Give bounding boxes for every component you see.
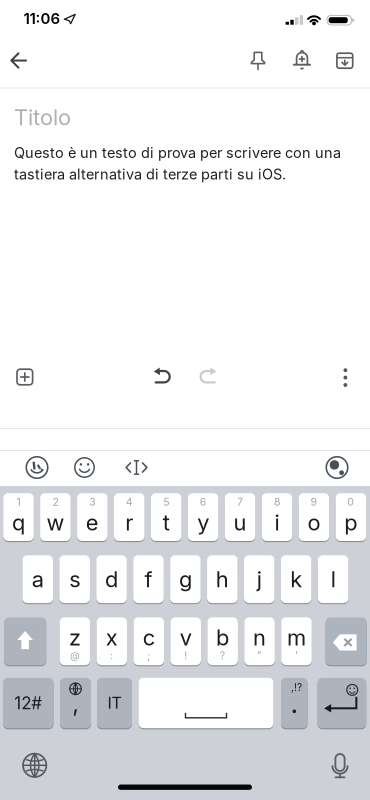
- button[interactable]: m: [281, 617, 312, 665]
- staticText: 8: [274, 496, 280, 508]
- staticText: :: [110, 650, 113, 662]
- staticText: c: [143, 624, 155, 651]
- staticText: d: [105, 566, 118, 592]
- button[interactable]: h: [207, 555, 238, 603]
- staticText: z: [69, 624, 81, 651]
- staticText: 5: [163, 496, 169, 508]
- button[interactable]: Next keyboard: [15, 745, 55, 785]
- button[interactable]: b: [207, 617, 238, 665]
- button[interactable]: Archive: [329, 44, 361, 76]
- staticText: 7: [237, 496, 243, 508]
- staticText: 9: [310, 496, 317, 508]
- button[interactable]: d: [96, 555, 127, 603]
- button[interactable]: Shift: [4, 617, 46, 665]
- staticText: t: [163, 509, 170, 536]
- staticText: a: [32, 566, 44, 592]
- button[interactable]: x: [96, 617, 127, 665]
- button[interactable]: Period: [281, 678, 308, 728]
- button[interactable]: g: [170, 555, 201, 603]
- button[interactable]: v: [170, 617, 201, 665]
- button[interactable]: 0: [336, 493, 366, 541]
- staticText: n: [253, 624, 266, 651]
- button[interactable]: a: [22, 555, 53, 603]
- button[interactable]: s: [59, 555, 90, 603]
- staticText: @: [70, 650, 80, 662]
- button[interactable]: 5: [151, 493, 181, 541]
- staticText: h: [216, 566, 229, 592]
- button[interactable]: n: [244, 617, 275, 665]
- staticText: r: [125, 509, 133, 536]
- button[interactable]: k: [281, 555, 311, 603]
- button[interactable]: c: [133, 617, 164, 665]
- button[interactable]: 4: [114, 493, 145, 541]
- staticText: m: [287, 624, 306, 651]
- staticText: ?: [220, 650, 225, 662]
- button[interactable]: Undo: [147, 361, 179, 393]
- button[interactable]: Reminder: [286, 44, 318, 76]
- staticText: p: [344, 509, 357, 536]
- button[interactable]: Dictate: [320, 745, 360, 785]
- button[interactable]: Emoji: [67, 450, 101, 484]
- staticText: Questo è un testo di prova per scrivere …: [14, 144, 341, 183]
- staticText: b: [216, 624, 229, 651]
- button[interactable]: Language IT: [97, 678, 132, 728]
- button[interactable]: 8: [262, 493, 292, 541]
- staticText: j: [257, 566, 262, 592]
- staticText: 4: [126, 496, 133, 508]
- staticText: x: [106, 624, 118, 651]
- staticText: !: [184, 650, 187, 662]
- staticText: k: [290, 566, 302, 592]
- button[interactable]: Comma: [60, 678, 91, 728]
- staticText: e: [86, 509, 99, 536]
- button[interactable]: j: [244, 555, 275, 603]
- button[interactable]: Pin: [242, 44, 274, 76]
- button[interactable]: z: [60, 617, 90, 665]
- button[interactable]: 9: [299, 493, 329, 541]
- staticText: q: [12, 509, 25, 536]
- button[interactable]: Delete: [326, 617, 367, 665]
- staticText: 12#: [14, 693, 42, 713]
- button[interactable]: 7: [225, 493, 255, 541]
- staticText: 6: [200, 496, 207, 508]
- staticText: l: [331, 566, 336, 592]
- button[interactable]: 6: [188, 493, 218, 541]
- button[interactable]: Cursor control: [119, 450, 153, 484]
- button[interactable]: Space: [138, 678, 273, 728]
- staticText: v: [180, 624, 192, 651]
- staticText: ;: [147, 650, 150, 662]
- button[interactable]: Redo: [191, 361, 223, 393]
- staticText: Titolo: [14, 104, 71, 131]
- staticText: g: [179, 566, 192, 592]
- button[interactable]: SwiftKey: [20, 450, 54, 484]
- staticText: s: [69, 566, 80, 592]
- staticText: ': [295, 650, 298, 662]
- staticText: 11:06: [23, 9, 60, 28]
- staticText: ,!?: [291, 681, 302, 693]
- staticText: ,: [72, 689, 78, 717]
- staticText: f: [144, 566, 152, 592]
- button[interactable]: 1: [3, 493, 34, 541]
- button[interactable]: More options: [329, 362, 361, 394]
- staticText: u: [234, 509, 247, 536]
- button[interactable]: l: [318, 555, 348, 603]
- button[interactable]: Back: [9, 44, 41, 76]
- staticText: w: [46, 509, 64, 536]
- button[interactable]: 2: [40, 493, 71, 541]
- staticText: 2: [52, 496, 58, 508]
- button[interactable]: Numbers: [3, 678, 54, 728]
- staticText: i: [274, 509, 279, 536]
- button[interactable]: 3: [77, 493, 108, 541]
- button[interactable]: Return: [317, 678, 366, 728]
- staticText: 3: [89, 496, 95, 508]
- staticText: ": [257, 650, 262, 662]
- button[interactable]: Themes: [320, 450, 354, 484]
- button[interactable]: f: [133, 555, 164, 603]
- button[interactable]: Add attachment: [9, 361, 41, 393]
- staticText: y: [197, 509, 209, 536]
- staticText: 0: [347, 496, 354, 508]
- staticText: 1: [16, 496, 20, 508]
- staticText: IT: [107, 693, 121, 713]
- staticText: o: [307, 509, 320, 536]
